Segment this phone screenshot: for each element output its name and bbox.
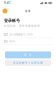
staticText: 登录 — [25, 9, 31, 13]
staticText: 欢迎回来，请登录继续使用 — [4, 24, 40, 28]
staticText: you@example.com — [9, 33, 32, 36]
staticText: 密码 — [9, 40, 15, 43]
staticText: 9:41 — [4, 1, 11, 5]
button[interactable]: 登 录 — [5, 51, 51, 58]
button[interactable]: 还没有帐号？立即注册 — [5, 60, 51, 66]
staticText: 还没有帐号？立即注册 — [13, 61, 43, 64]
staticText: 登 录 — [24, 53, 32, 57]
staticText: 登录帐号 — [4, 18, 20, 23]
